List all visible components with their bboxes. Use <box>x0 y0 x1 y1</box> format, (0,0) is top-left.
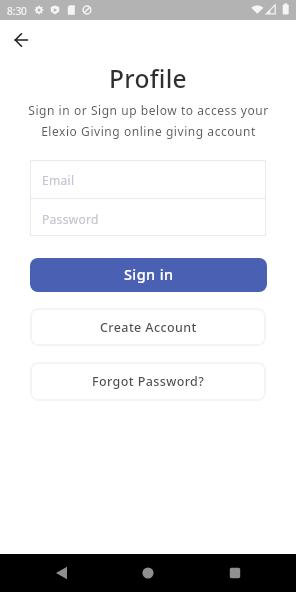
button[interactable]: Forgot Password? <box>30 362 266 401</box>
button[interactable]: Password <box>30 199 266 236</box>
staticText: Create Account <box>100 319 197 336</box>
staticText: 8:30 <box>7 4 27 18</box>
staticText: Forgot Password? <box>92 373 205 390</box>
button[interactable]: Email <box>30 160 266 198</box>
staticText: Email <box>42 172 75 188</box>
staticText: Sign in or Sign up below to access your … <box>28 102 269 139</box>
staticText: Sign in <box>124 264 174 284</box>
staticText: Profile <box>109 62 187 95</box>
button[interactable] <box>46 557 78 589</box>
button[interactable]: Create Account <box>30 308 266 346</box>
button[interactable] <box>219 557 251 589</box>
staticText: Password <box>42 211 99 227</box>
button[interactable] <box>9 28 33 52</box>
button[interactable]: Sign in <box>30 258 267 292</box>
button[interactable] <box>132 557 164 589</box>
